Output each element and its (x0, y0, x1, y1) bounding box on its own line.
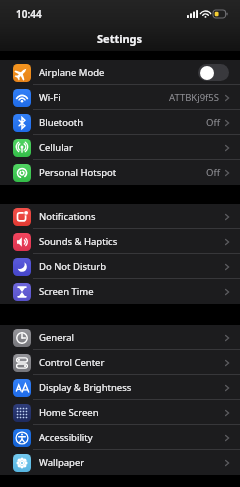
button[interactable]: Cellular (0, 135, 240, 160)
staticText: Off (206, 116, 220, 129)
button[interactable]: Wallpaper (0, 450, 240, 475)
staticText: Wallpaper (39, 456, 225, 469)
staticText: Sounds & Haptics (39, 235, 225, 248)
button[interactable]: Wi-Fi (0, 85, 240, 110)
button[interactable]: Accessibility (0, 425, 240, 450)
button[interactable]: Sounds & Haptics (0, 229, 240, 254)
button[interactable]: Airplane Mode toggle (198, 64, 229, 81)
staticText: Home Screen (39, 406, 225, 419)
button[interactable]: Personal Hotspot (0, 160, 240, 185)
staticText: Wi-Fi (39, 91, 169, 104)
staticText: ATTBKj9f5S (169, 91, 220, 104)
button[interactable]: Screen Time (0, 279, 240, 304)
staticText: Cellular (39, 141, 225, 154)
staticText: Off (206, 166, 220, 179)
staticText: Bluetooth (39, 116, 206, 129)
staticText: Airplane Mode (39, 66, 198, 79)
staticText: Notifications (39, 210, 225, 223)
staticText: Do Not Disturb (39, 260, 225, 273)
button[interactable]: Airplane Mode (0, 60, 240, 85)
button[interactable]: General (0, 325, 240, 350)
button[interactable]: Control Center (0, 350, 240, 375)
staticText: Display & Brightness (39, 381, 225, 394)
button[interactable]: Home Screen (0, 400, 240, 425)
staticText: Settings (97, 31, 143, 46)
staticText: 10:44 (16, 7, 42, 21)
staticText: Control Center (39, 356, 225, 369)
staticText: Accessibility (39, 431, 225, 444)
button[interactable]: Bluetooth (0, 110, 240, 135)
staticText: Screen Time (39, 285, 225, 298)
button[interactable]: Display & Brightness (0, 375, 240, 400)
button[interactable]: Do Not Disturb (0, 254, 240, 279)
staticText: General (39, 331, 225, 344)
staticText: Personal Hotspot (39, 166, 206, 179)
button[interactable]: Notifications (0, 204, 240, 229)
